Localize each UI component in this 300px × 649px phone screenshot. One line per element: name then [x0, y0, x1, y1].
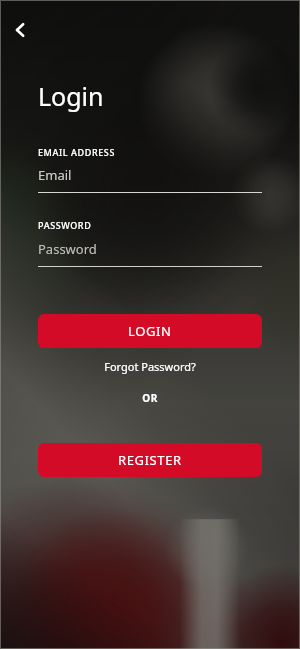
button[interactable]: LOGIN — [38, 314, 262, 348]
staticText: PASSWORD — [38, 219, 92, 231]
staticText: OR — [38, 391, 262, 405]
staticText: Password — [38, 240, 97, 258]
staticText: Forgot Password? — [104, 359, 196, 374]
button[interactable]: REGISTER — [38, 443, 262, 477]
staticText: EMAIL ADDRESS — [38, 146, 115, 158]
button[interactable]: Back — [4, 13, 38, 47]
staticText: LOGIN — [128, 322, 172, 340]
staticText: Email — [38, 166, 72, 184]
button[interactable]: Forgot Password? — [38, 359, 262, 374]
button[interactable]: Password — [38, 240, 262, 258]
staticText: REGISTER — [118, 451, 182, 469]
button[interactable]: Email — [38, 166, 262, 184]
staticText: Login — [38, 79, 104, 113]
